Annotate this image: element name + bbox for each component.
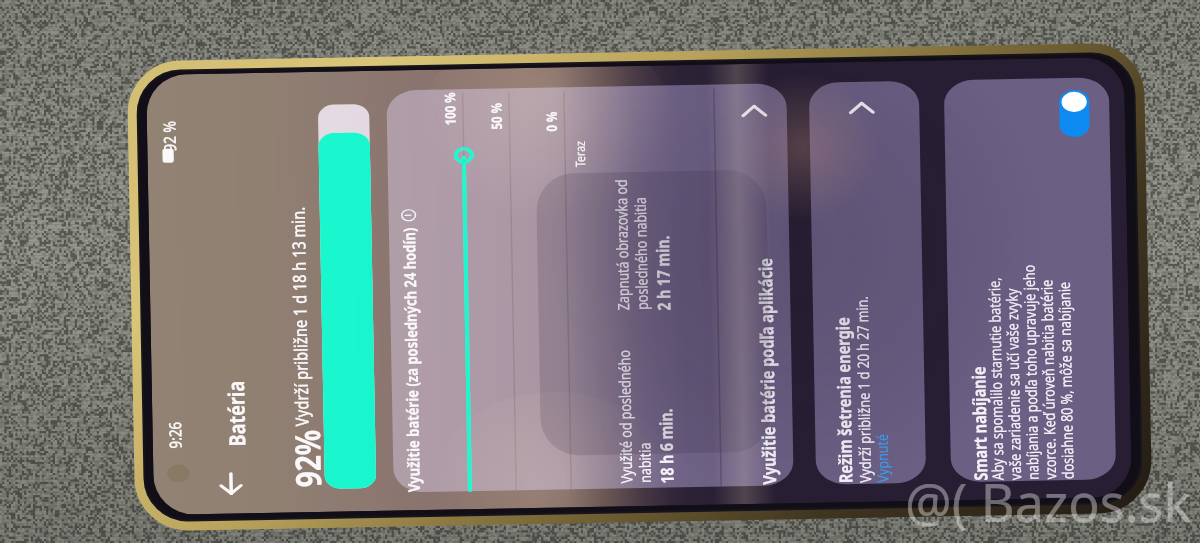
- button[interactable]: [0, 0, 1200, 543]
